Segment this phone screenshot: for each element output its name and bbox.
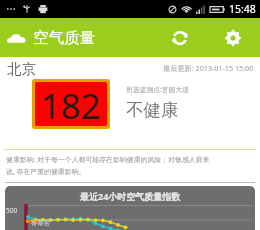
staticText: 15:48 — [229, 2, 256, 16]
other: App icon — [7, 32, 26, 45]
staticText: 说, 存在严重的健康影响。 — [6, 167, 86, 176]
button[interactable]: 最近24小时空气质量指数 — [5, 186, 255, 230]
staticText: 空气质量 — [33, 28, 95, 48]
staticText: 健康影响: 对于每一个人都可能存在影响健康的风险；对敏感人群来 — [6, 155, 210, 164]
staticText: 最近24小时空气质量指数 — [80, 190, 181, 202]
staticText: 有毒害 — [31, 219, 50, 227]
button[interactable]: Settings — [216, 21, 250, 55]
button[interactable]: Refresh — [163, 21, 197, 55]
staticText: 最后更新: 2013-01-15 15:00 — [163, 63, 254, 73]
staticText: 182 — [41, 82, 102, 126]
staticText: 500 — [6, 206, 18, 215]
staticText: 北京 — [7, 60, 36, 78]
button[interactable]: App icon — [7, 28, 95, 48]
staticText: 不健康 — [126, 99, 179, 121]
staticText: 所选监测点:官园大道 — [126, 85, 189, 94]
